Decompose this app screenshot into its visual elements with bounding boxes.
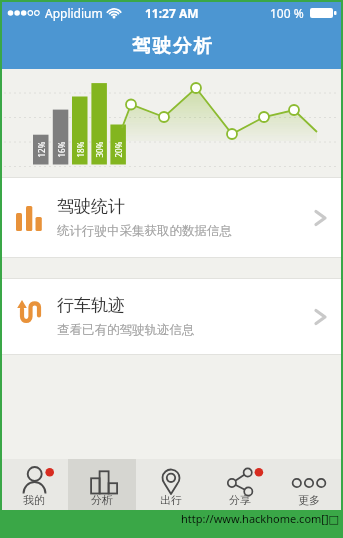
staticText: 行车轨迹 — [57, 295, 125, 316]
staticText: 驾驶分析 — [131, 34, 213, 57]
staticText: 驾驶统计 — [57, 196, 125, 217]
staticText: 20% — [112, 141, 123, 157]
button[interactable]: 我的 — [0, 459, 68, 510]
button[interactable]: 行车轨迹 — [0, 278, 343, 355]
button[interactable]: 出行 — [136, 459, 205, 510]
staticText: 出行 — [160, 493, 182, 507]
button[interactable]: 驾驶统计 — [0, 177, 343, 258]
staticText: 我的 — [23, 493, 45, 507]
staticText: 11:27 AM — [145, 5, 199, 21]
button[interactable]: 分享 — [205, 459, 274, 510]
staticText: 更多 — [298, 493, 320, 507]
staticText: 12% — [35, 141, 46, 157]
staticText: 100 % — [270, 5, 304, 21]
staticText: 16% — [55, 141, 66, 157]
staticText: 分析 — [91, 493, 113, 507]
staticText: 查看已有的驾驶轨迹信息 — [57, 322, 195, 338]
staticText: 分享 — [229, 493, 251, 507]
staticText: Applidium — [45, 5, 103, 21]
button[interactable]: 更多 — [274, 459, 343, 510]
staticText: 统计行驶中采集获取的数据信息 — [57, 223, 232, 239]
staticText: 30% — [93, 141, 104, 157]
staticText: 18% — [74, 141, 85, 157]
button[interactable]: 分析 — [68, 459, 136, 510]
staticText: http://www.hackhome.com[]□ — [181, 511, 339, 526]
